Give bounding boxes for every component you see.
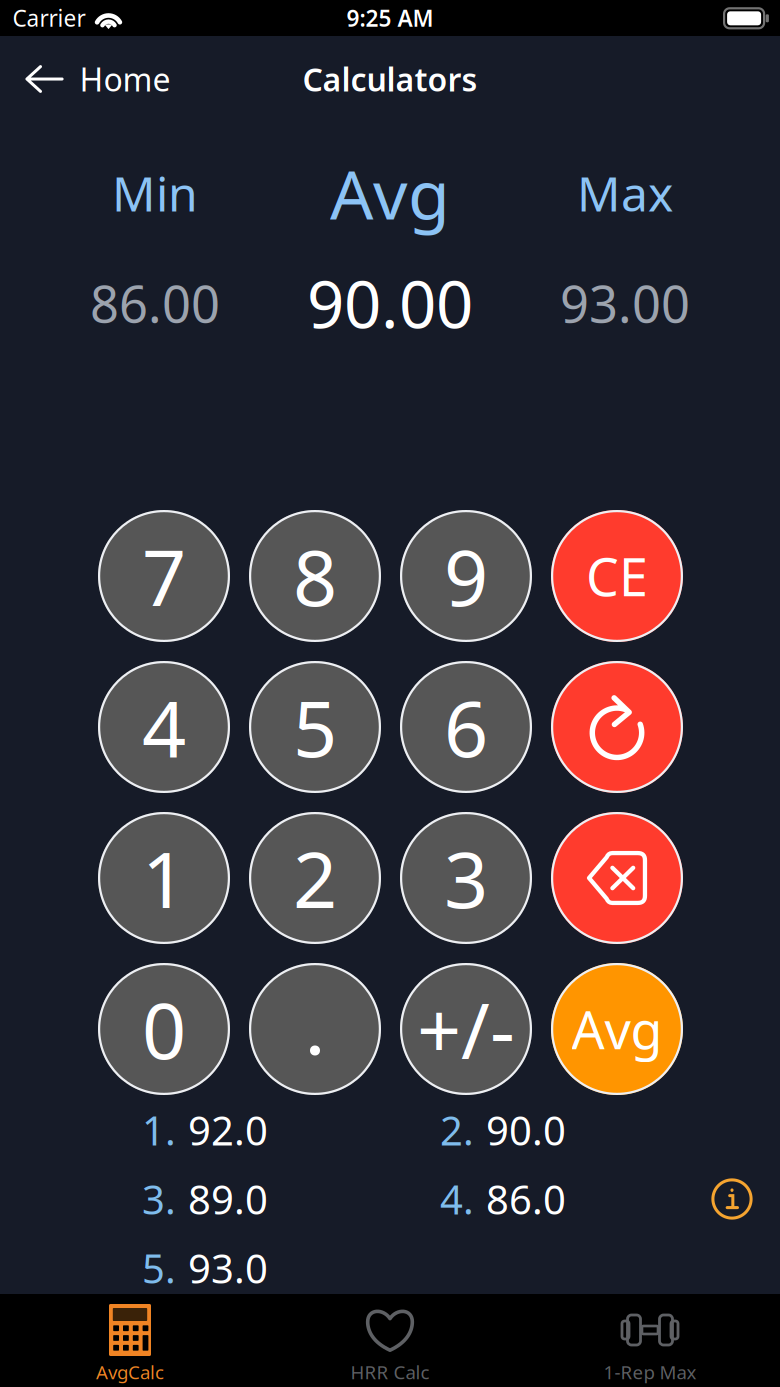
button[interactable]: Avg [551,963,683,1095]
staticText: 6 [444,676,488,778]
button[interactable] [551,812,683,944]
staticText: 5 [293,676,337,778]
button[interactable]: 4 [98,661,230,793]
button[interactable]: HRR Calc [280,1294,500,1387]
staticText: 0 [142,978,186,1080]
staticText: Carrier [12,3,85,33]
staticText: Avg [571,994,662,1064]
button[interactable]: 9 [400,510,532,642]
staticText: 1 [142,827,186,929]
staticText: 93.0 [188,1241,268,1294]
staticText: Min [112,161,198,225]
button[interactable]: 3 [400,812,532,944]
button[interactable]: +/- [400,963,532,1095]
staticText: 93.00 [560,269,690,337]
staticText: 89.0 [188,1172,268,1225]
staticText: 3 [444,827,488,929]
button[interactable]: 7 [98,510,230,642]
staticText: 4 [142,676,186,778]
staticText: AvgCalc [96,1360,164,1384]
staticText: Avg [330,148,450,238]
staticText: 1-Rep Max [603,1360,696,1384]
button[interactable]: 8 [249,510,381,642]
staticText: 8 [293,525,337,627]
staticText: 4. [440,1172,474,1225]
staticText: Home [79,58,170,100]
staticText: 86.00 [90,269,220,337]
button[interactable]: 2 [249,812,381,944]
staticText: 2. [440,1103,474,1156]
button[interactable]: Min [45,141,265,356]
button[interactable]: 6 [400,661,532,793]
button[interactable] [249,963,381,1095]
button[interactable]: 1 [98,812,230,944]
staticText: 9:25 AM [346,3,433,33]
staticText: 86.0 [486,1172,566,1225]
staticText: 90.0 [486,1103,566,1156]
button[interactable] [551,661,683,793]
button[interactable]: 1-Rep Max [540,1294,760,1387]
button[interactable]: 0 [98,963,230,1095]
staticText: Calculators [302,58,477,100]
staticText: 9 [444,525,488,627]
staticText: 2 [293,827,337,929]
staticText: 5. [142,1241,176,1294]
button[interactable]: Max [515,141,735,356]
staticText: Max [577,161,673,225]
button[interactable]: Avg [265,141,515,356]
staticText: 1. [142,1103,176,1156]
staticText: CE [586,541,648,611]
button[interactable]: AvgCalc [20,1294,240,1387]
button[interactable]: 5 [249,661,381,793]
staticText: +/- [417,978,515,1080]
staticText: 7 [142,525,186,627]
staticText: HRR Calc [350,1360,429,1384]
staticText: 92.0 [188,1103,268,1156]
button[interactable]: CE [551,510,683,642]
button[interactable]: Home [0,46,196,112]
staticText: 90.00 [307,260,473,346]
staticText: 3. [142,1172,176,1225]
button[interactable]: Info [711,1178,753,1220]
